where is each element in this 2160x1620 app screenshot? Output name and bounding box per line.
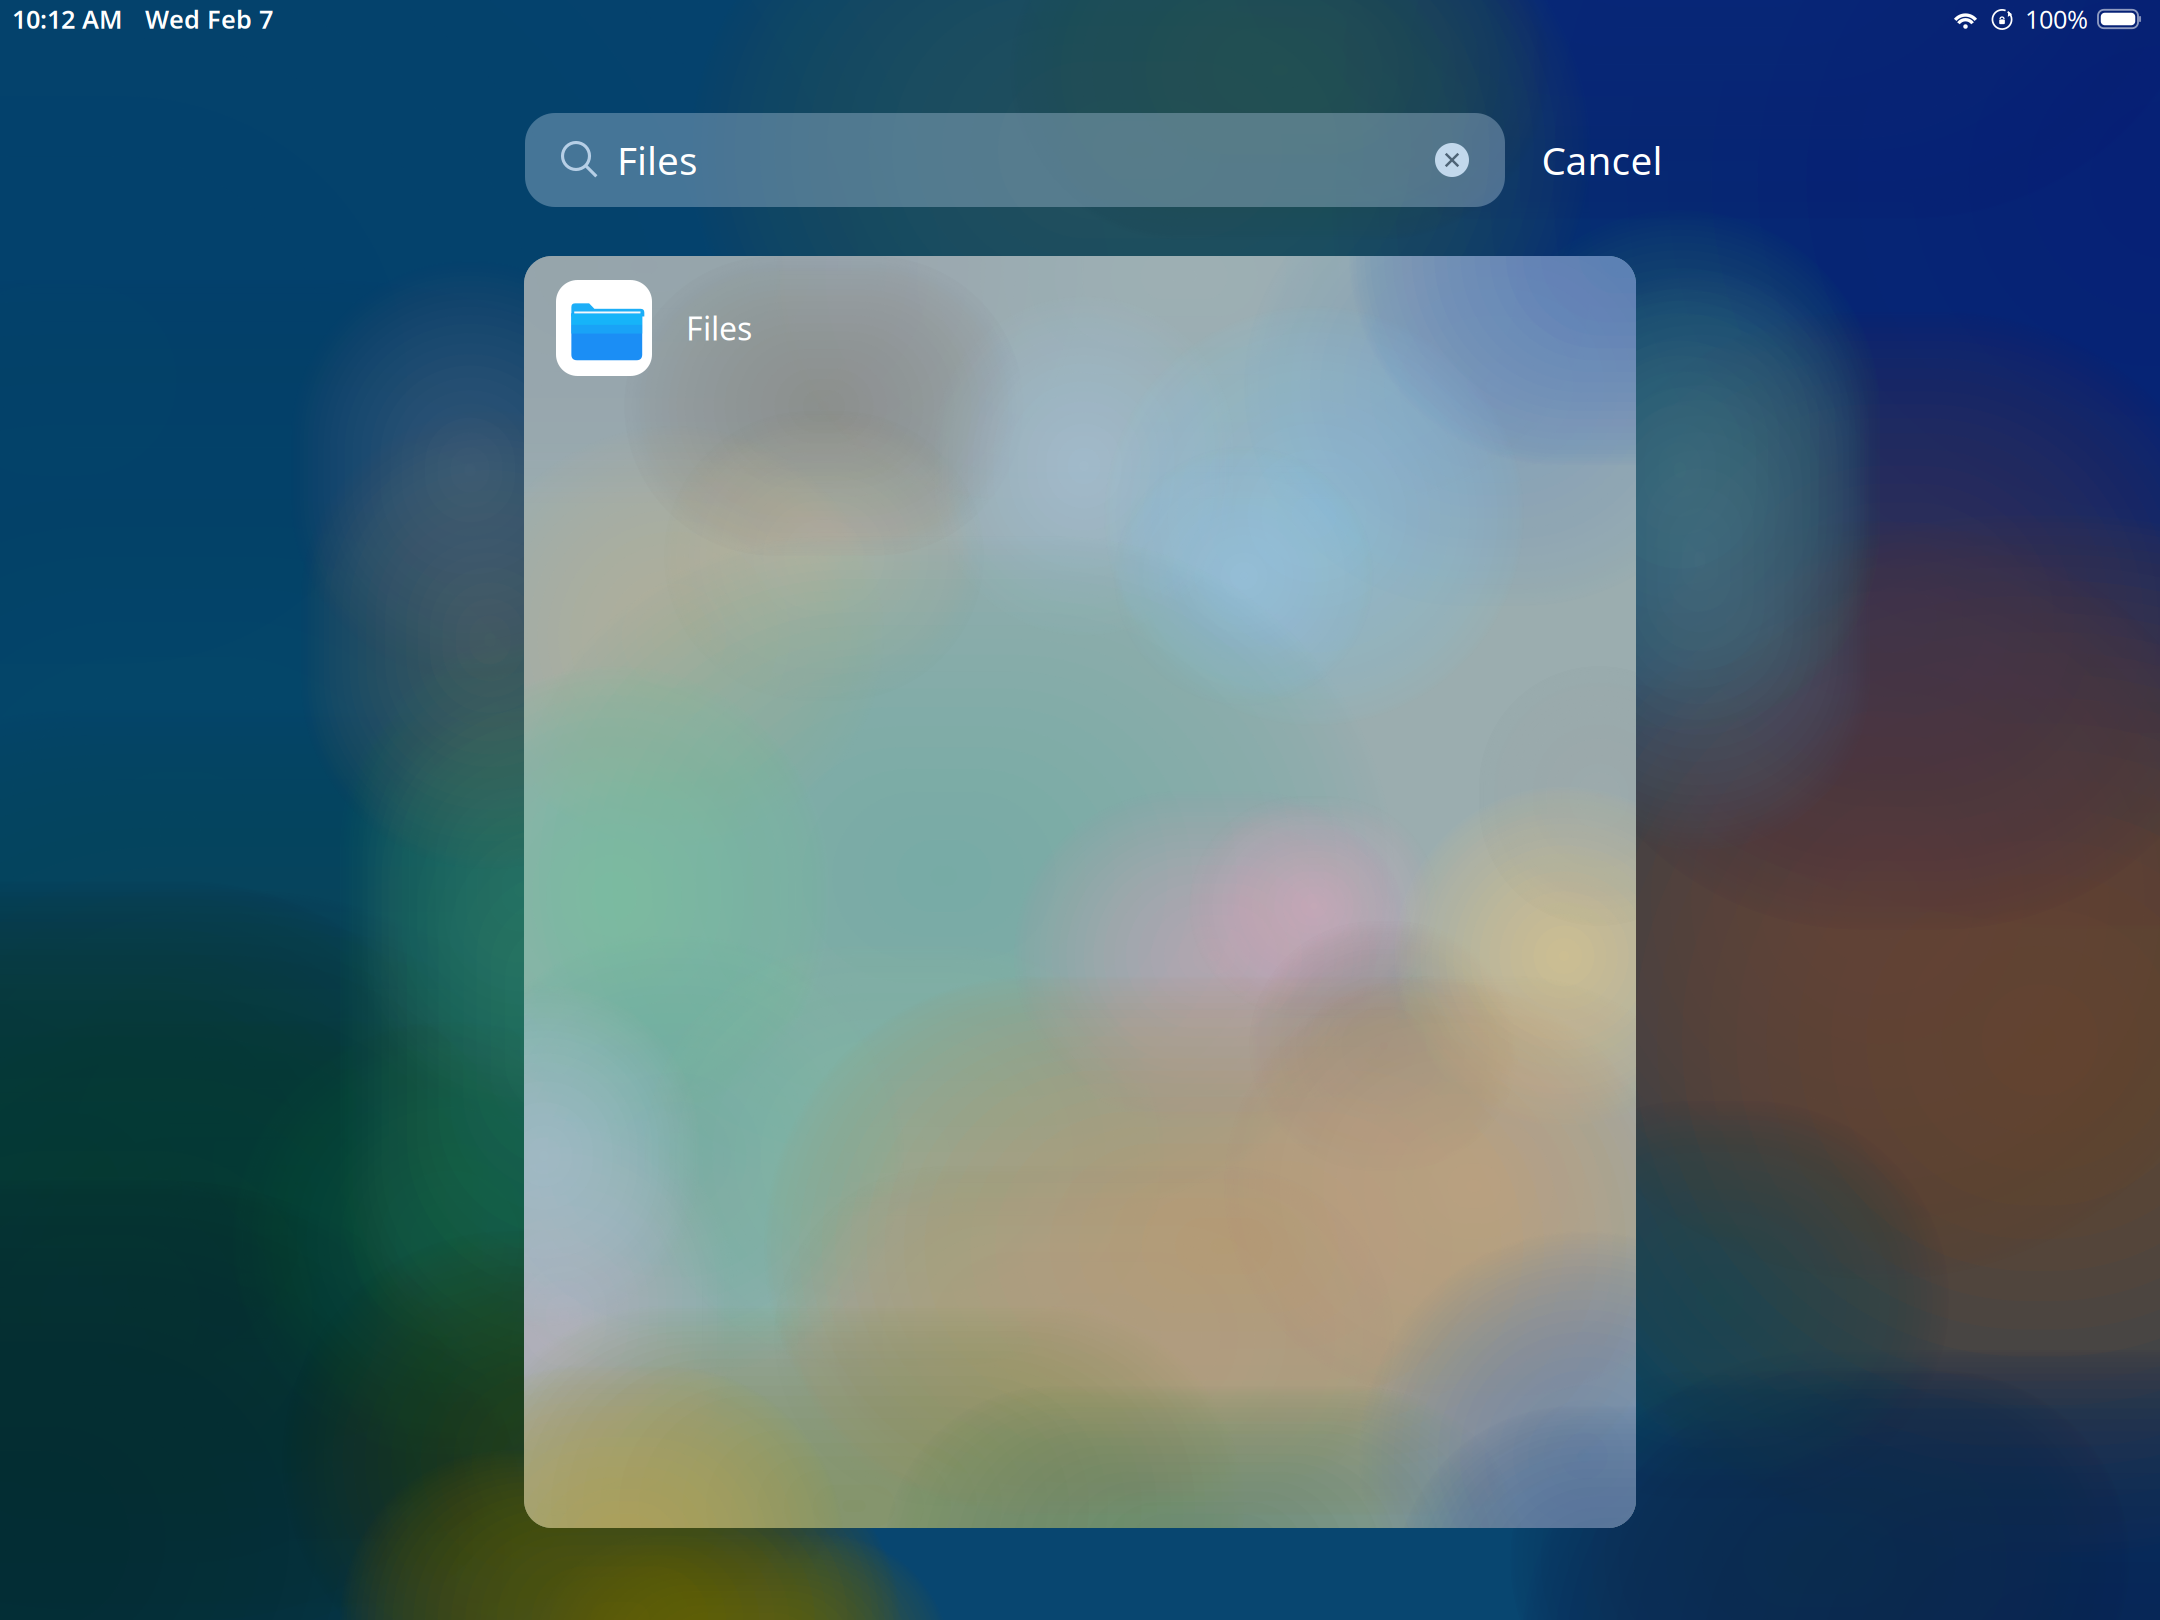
staticText: 10:12 AM [12,2,123,36]
staticText: Files [617,134,698,186]
staticText: Wed Feb 7 [145,2,273,36]
button[interactable]: Cancel [1512,113,1692,207]
button[interactable]: Files [525,113,1505,207]
staticText: Files [686,307,752,349]
staticText: Cancel [1541,134,1662,186]
button[interactable]: Files [524,264,1636,392]
button[interactable]: Clear text [1426,134,1478,186]
staticText: 100% [2025,2,2088,36]
